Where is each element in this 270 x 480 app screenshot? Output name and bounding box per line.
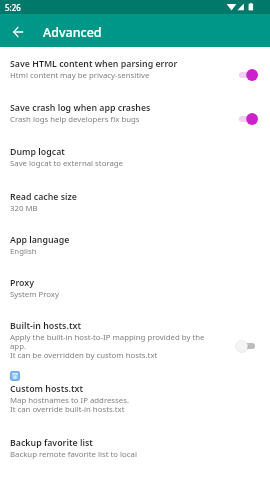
staticText: Map hostnames to IP addresses. It can ov… <box>10 395 130 415</box>
staticText: 320 MB <box>10 203 38 214</box>
button[interactable] <box>0 432 270 472</box>
button[interactable] <box>0 362 270 418</box>
staticText: Proxy <box>10 277 35 289</box>
staticText: 5:26 <box>5 2 21 13</box>
staticText: Html content may be privacy-sensitive <box>10 70 150 81</box>
button[interactable] <box>0 272 270 312</box>
button[interactable]: Toggle, on <box>236 67 258 83</box>
staticText: Save crash log when app crashes <box>10 102 151 114</box>
button[interactable]: Toggle, on <box>236 111 258 127</box>
staticText: Crash logs help developers fix bugs <box>10 114 140 125</box>
staticText: Backup favorite list <box>10 437 93 449</box>
button[interactable] <box>0 316 270 369</box>
button[interactable] <box>0 54 270 94</box>
staticText: Advanced <box>43 24 102 41</box>
button[interactable]: Toggle, off <box>236 338 258 354</box>
staticText: Built-in hosts.txt <box>10 320 81 332</box>
staticText: Custom hosts.txt <box>10 383 84 395</box>
button[interactable] <box>0 229 270 269</box>
button[interactable] <box>0 186 270 226</box>
staticText: App language <box>10 234 70 246</box>
button[interactable]: Navigate up <box>5 19 31 45</box>
staticText: English <box>10 246 37 257</box>
staticText: Apply the built-in host-to-IP mapping pr… <box>10 332 205 361</box>
staticText: System Proxy <box>10 289 59 300</box>
button[interactable] <box>0 142 270 182</box>
staticText: Save HTML content when parsing error <box>10 58 178 70</box>
staticText: Save logcat to external storage <box>10 158 124 169</box>
staticText: Read cache size <box>10 191 77 203</box>
staticText: Dump logcat <box>10 146 65 158</box>
staticText: Backup remote favorite list to local <box>10 449 137 460</box>
button[interactable] <box>0 98 270 138</box>
